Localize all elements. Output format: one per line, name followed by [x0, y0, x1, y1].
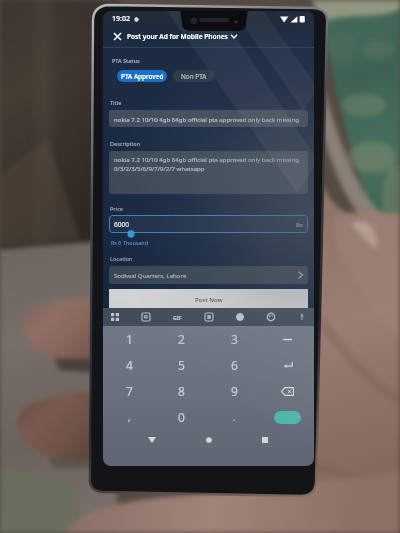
staticText: GIF — [173, 314, 182, 321]
staticText: nokia 7.2 10/10 4gb 64gb official pta ap… — [114, 155, 299, 173]
button[interactable]: Settings — [233, 310, 247, 324]
button[interactable]: 1 — [103, 326, 155, 352]
button[interactable]: GIF — [170, 310, 184, 324]
staticText: Title — [110, 99, 122, 106]
staticText: PTA Approved — [121, 72, 164, 81]
staticText: 6 — [231, 357, 238, 373]
button[interactable]: 3 — [208, 326, 261, 352]
staticText: Price — [110, 205, 124, 212]
staticText: Location — [110, 255, 133, 262]
button[interactable]: key — [261, 378, 314, 404]
button[interactable]: Stickers — [139, 310, 153, 324]
staticText: 6000 — [114, 220, 130, 229]
staticText: 0 — [178, 409, 185, 425]
button[interactable]: 7 — [103, 378, 155, 404]
button[interactable]: Clipboard — [202, 310, 216, 324]
staticText: nokia 7.2 10/10 4gb 64gb official pta ap… — [114, 115, 299, 123]
staticText: Post Now — [195, 295, 223, 303]
staticText: Non PTA — [181, 72, 207, 81]
staticText: 7 — [126, 383, 133, 399]
button[interactable]: PTA Approved — [117, 70, 167, 82]
button[interactable]: Home — [201, 432, 217, 448]
staticText: , — [128, 411, 131, 423]
button[interactable]: Non PTA — [173, 70, 214, 82]
button[interactable]: 4 — [103, 352, 155, 378]
staticText: 9 — [231, 383, 238, 399]
staticText: 3 — [231, 331, 238, 347]
button[interactable]: Recents — [257, 432, 273, 448]
staticText: 5 — [178, 357, 185, 373]
button[interactable]: key — [261, 404, 314, 430]
button[interactable]: , — [103, 404, 155, 430]
staticText: PTA Status — [112, 57, 140, 64]
button[interactable]: nokia 7.2 10/10 4gb 64gb official pta ap… — [114, 155, 303, 194]
button[interactable]: key — [261, 352, 314, 378]
button[interactable]: key — [261, 326, 314, 352]
button[interactable]: Hide keyboard — [144, 432, 160, 448]
button[interactable]: 6000 — [114, 215, 303, 233]
staticText: . — [233, 411, 236, 423]
staticText: Rs — [296, 220, 303, 228]
button[interactable]: . — [208, 404, 261, 430]
staticText: 1 — [126, 331, 133, 347]
staticText: Sodiwal Quarters, Lahore — [114, 271, 187, 279]
staticText: 8 — [178, 383, 185, 399]
staticText: 19:02 — [112, 14, 130, 24]
button[interactable]: Voice input — [295, 310, 309, 324]
button[interactable]: 0 — [155, 404, 208, 430]
button[interactable]: nokia 7.2 10/10 4gb 64gb official pta ap… — [114, 110, 303, 127]
button[interactable]: Sodiwal Quarters, Lahore — [114, 266, 303, 284]
button[interactable]: 6 — [208, 352, 261, 378]
button[interactable]: 2 — [155, 326, 208, 352]
staticText: 2 — [178, 331, 185, 347]
button[interactable]: 9 — [208, 378, 261, 404]
button[interactable]: Close — [111, 30, 123, 42]
button[interactable]: Apps — [108, 310, 122, 324]
staticText: Post your Ad for Mobile Phones — [127, 32, 228, 41]
staticText: Rs 6 Thousand — [111, 239, 148, 246]
button[interactable]: 5 — [155, 352, 208, 378]
staticText: Description — [110, 140, 141, 147]
button[interactable]: 8 — [155, 378, 208, 404]
button[interactable]: Post Now — [109, 289, 308, 308]
staticText: 4 — [126, 357, 133, 373]
button[interactable]: Themes — [264, 310, 278, 324]
